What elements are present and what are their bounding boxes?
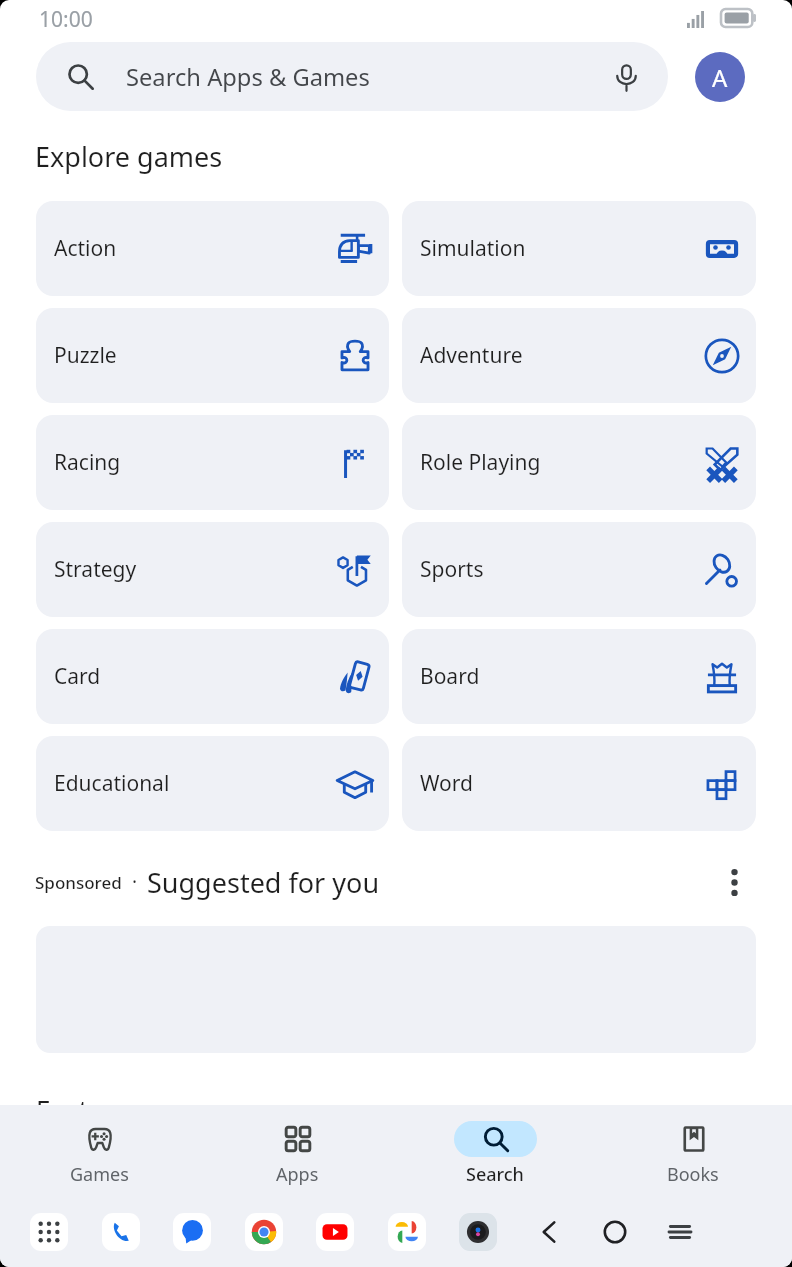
button[interactable]: Search Apps & Games: [36, 42, 668, 111]
staticText: Sponsored: [35, 871, 122, 894]
button[interactable]: Games: [0, 1105, 198, 1187]
button[interactable]: Adventure: [402, 308, 756, 403]
button[interactable]: Educational: [36, 736, 389, 831]
button[interactable]: Chrome: [245, 1213, 283, 1251]
button[interactable]: Books: [594, 1105, 792, 1187]
staticText: Board: [420, 662, 480, 691]
button[interactable]: Back: [528, 1211, 570, 1253]
staticText: Search: [466, 1162, 524, 1187]
staticText: Suggested for you: [147, 864, 380, 901]
staticText: Apps: [276, 1162, 319, 1187]
button[interactable]: Photos: [388, 1213, 426, 1251]
staticText: A: [712, 61, 728, 94]
button[interactable]: Account: [695, 52, 745, 102]
button[interactable]: Word: [402, 736, 756, 831]
staticText: Educational: [54, 769, 170, 798]
button[interactable]: Card: [36, 629, 389, 724]
button[interactable]: All apps: [30, 1213, 68, 1251]
staticText: Search Apps & Games: [126, 61, 370, 93]
staticText: Sports: [420, 555, 484, 584]
button[interactable]: Role Playing: [402, 415, 756, 510]
button[interactable]: Voice search: [598, 49, 654, 105]
button[interactable]: Simulation: [402, 201, 756, 296]
button[interactable]: Recent apps: [659, 1211, 701, 1253]
button[interactable]: Strategy: [36, 522, 389, 617]
button[interactable]: Phone: [102, 1213, 140, 1251]
staticText: Role Playing: [420, 448, 541, 477]
staticText: Adventure: [420, 341, 523, 370]
staticText: Simulation: [420, 234, 526, 263]
button[interactable]: Puzzle: [36, 308, 389, 403]
button[interactable]: Racing: [36, 415, 389, 510]
staticText: Games: [70, 1162, 129, 1187]
button[interactable]: More options: [712, 860, 756, 904]
staticText: ·: [122, 869, 147, 895]
staticText: Features: [36, 1091, 142, 1126]
button[interactable]: Messages: [173, 1213, 211, 1251]
staticText: Racing: [54, 448, 121, 477]
staticText: Action: [54, 234, 117, 263]
button[interactable]: Sports: [402, 522, 756, 617]
staticText: Card: [54, 662, 101, 691]
button[interactable]: Apps: [198, 1105, 396, 1187]
button[interactable]: Home: [594, 1211, 636, 1253]
staticText: Strategy: [54, 555, 137, 584]
button[interactable]: Search: [396, 1105, 594, 1187]
button[interactable]: Camera: [459, 1213, 497, 1251]
staticText: Books: [667, 1162, 719, 1187]
staticText: Word: [420, 769, 473, 798]
button[interactable]: YouTube: [316, 1213, 354, 1251]
button[interactable]: Action: [36, 201, 389, 296]
staticText: Puzzle: [54, 341, 117, 370]
staticText: 10:00: [39, 5, 93, 34]
staticText: Explore games: [35, 138, 223, 175]
button[interactable]: Board: [402, 629, 756, 724]
